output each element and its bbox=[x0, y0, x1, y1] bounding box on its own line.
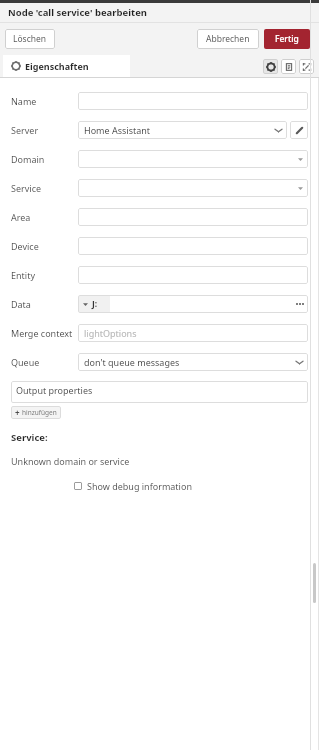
staticText: Abbrechen bbox=[206, 33, 250, 45]
button[interactable] bbox=[78, 237, 308, 255]
button[interactable] bbox=[78, 92, 308, 110]
button[interactable]: Home Assistant bbox=[78, 121, 287, 139]
staticText: Show debug information bbox=[87, 480, 192, 492]
staticText: Area bbox=[11, 211, 31, 223]
staticText: + bbox=[15, 407, 20, 418]
staticText: Service: bbox=[11, 431, 48, 444]
button[interactable]: Bearbeiten bbox=[290, 121, 308, 139]
button[interactable]: Einstellungen bbox=[263, 59, 278, 74]
staticText: J: bbox=[92, 298, 98, 310]
button[interactable] bbox=[78, 208, 308, 226]
staticText: Löschen bbox=[13, 33, 47, 45]
button[interactable]: Löschen bbox=[5, 29, 55, 49]
staticText: Server bbox=[11, 124, 39, 136]
staticText: Data bbox=[11, 298, 31, 310]
staticText: Domain bbox=[11, 153, 45, 165]
button[interactable]: Dokumentation bbox=[281, 59, 296, 74]
button[interactable]: Vollbild bbox=[299, 59, 314, 74]
button[interactable] bbox=[78, 179, 308, 197]
staticText: Fertig bbox=[275, 33, 299, 45]
button[interactable]: Fertig bbox=[264, 29, 310, 49]
button[interactable] bbox=[78, 266, 308, 284]
staticText: Output properties bbox=[16, 384, 93, 396]
button[interactable]: Abbrechen bbox=[197, 29, 259, 49]
staticText: Device bbox=[11, 240, 39, 252]
staticText: Unknown domain or service bbox=[11, 455, 130, 467]
button[interactable] bbox=[78, 150, 308, 168]
button[interactable]: J: bbox=[78, 295, 110, 313]
button[interactable]: Mehr bbox=[292, 295, 308, 313]
staticText: Eigenschaften bbox=[25, 60, 89, 72]
button[interactable]: Show debug information bbox=[74, 480, 192, 492]
staticText: Home Assistant bbox=[84, 124, 151, 136]
staticText: Name bbox=[11, 95, 37, 107]
staticText: hinzufügen bbox=[22, 408, 57, 417]
button[interactable]: + bbox=[11, 406, 61, 419]
button[interactable]: lightOptions bbox=[78, 324, 308, 342]
staticText: Entity bbox=[11, 269, 35, 281]
staticText: Merge context bbox=[11, 327, 73, 339]
staticText: Node 'call service' bearbeiten bbox=[8, 6, 148, 19]
button[interactable]: don't queue messages bbox=[78, 353, 308, 371]
staticText: lightOptions bbox=[84, 327, 137, 339]
staticText: Service bbox=[11, 182, 42, 194]
staticText: Queue bbox=[11, 356, 40, 368]
staticText: don't queue messages bbox=[84, 356, 180, 368]
button[interactable]: Eigenschaften bbox=[3, 55, 130, 77]
